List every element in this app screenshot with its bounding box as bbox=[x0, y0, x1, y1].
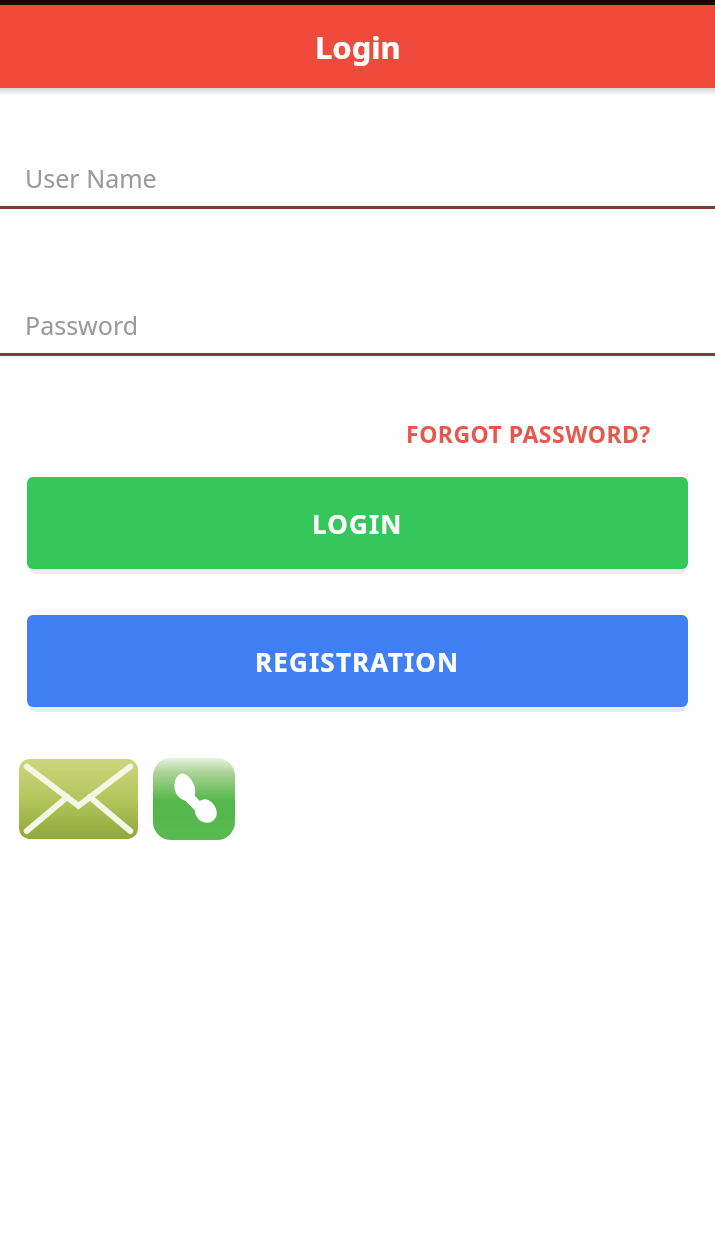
staticText: REGISTRATION bbox=[255, 644, 460, 679]
button[interactable]: REGISTRATION bbox=[27, 615, 688, 707]
button[interactable]: Call bbox=[153, 758, 235, 840]
button[interactable]: User Name bbox=[0, 150, 715, 206]
button[interactable]: FORGOT PASSWORD? bbox=[401, 411, 656, 456]
staticText: LOGIN bbox=[312, 506, 403, 541]
button[interactable]: Password bbox=[0, 297, 715, 353]
staticText: Password bbox=[25, 308, 139, 342]
staticText: FORGOT PASSWORD? bbox=[406, 418, 651, 449]
button[interactable]: LOGIN bbox=[27, 477, 688, 569]
staticText: User Name bbox=[25, 161, 157, 195]
staticText: Login bbox=[315, 26, 401, 68]
button[interactable]: Send email bbox=[19, 759, 138, 839]
